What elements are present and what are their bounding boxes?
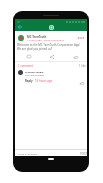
staticText: This app is great! — [25, 73, 45, 76]
button[interactable]: Reply — [25, 79, 33, 83]
staticText: POST — [80, 152, 87, 156]
button[interactable]: Comment — [24, 52, 33, 61]
staticText: 14 hours ago — [35, 79, 53, 83]
staticText: 1 like — [79, 64, 86, 68]
staticText: Pradeep Sangle — [25, 70, 44, 73]
button[interactable]: POST — [79, 151, 88, 157]
button[interactable]: 1 like — [78, 63, 87, 69]
staticText: Write a comment... — [18, 152, 40, 155]
staticText: 14 hours ago • Karve Community — [27, 38, 64, 41]
button[interactable]: Like — [71, 52, 80, 61]
staticText: Welcome to the MC TeenTruth Corporation … — [17, 43, 80, 47]
button[interactable]: Like comment — [80, 81, 84, 85]
button[interactable]: Back — [16, 23, 24, 31]
button[interactable]: Share — [47, 52, 56, 61]
button[interactable]: 1 comment — [17, 63, 34, 69]
button[interactable]: More options — [76, 33, 85, 42]
button[interactable]: Home — [49, 25, 54, 30]
staticText: We are glad you joined us!! — [17, 47, 53, 51]
button[interactable]: Write a comment... — [17, 151, 41, 156]
staticText: MC TeenTruth — [27, 35, 47, 39]
staticText: 1 comment — [18, 64, 33, 68]
staticText: Reply — [25, 79, 33, 83]
